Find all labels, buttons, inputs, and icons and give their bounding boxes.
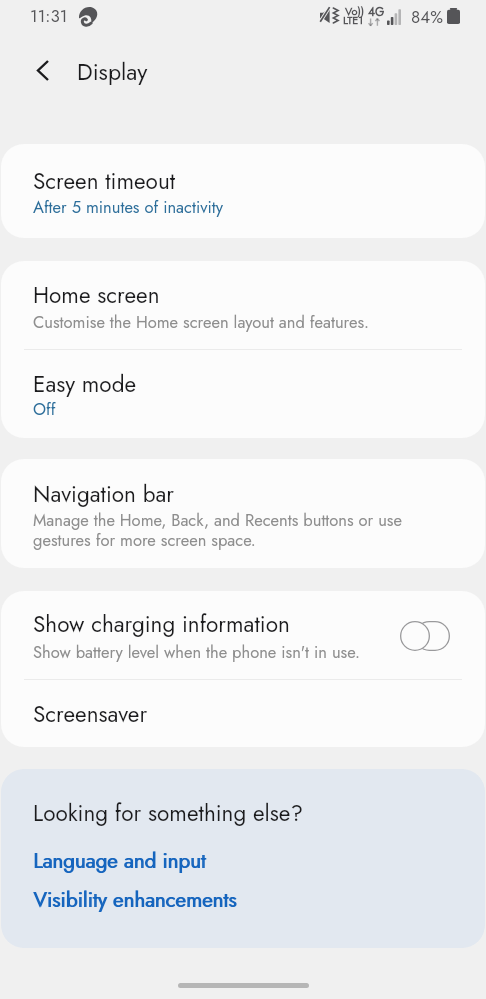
staticText: Home screen [33, 279, 160, 312]
staticText: Visibility enhancements [33, 885, 237, 915]
staticText: Navigation bar [33, 478, 175, 511]
staticText: Screensaver [33, 698, 148, 731]
staticText: 4G [368, 3, 385, 20]
staticText: LTE1 [343, 12, 364, 28]
staticText: Looking for something else? [33, 797, 303, 830]
staticText: Manage the Home, Back, and Recents butto… [33, 508, 405, 552]
staticText: Display [77, 55, 148, 88]
staticText: 11:31 [30, 4, 68, 29]
staticText: Visibility enhancements [34, 885, 238, 915]
staticText: Customise the Home screen layout and fea… [33, 310, 370, 334]
staticText: After 5 minutes of inactivity [33, 195, 223, 219]
staticText: Vo)) [345, 3, 365, 19]
button[interactable]: Home screen [1, 261, 485, 438]
button[interactable]: Language and input [33, 846, 206, 876]
staticText: Easy mode [33, 368, 137, 401]
button[interactable]: Show charging information [1, 591, 485, 747]
button[interactable]: Navigation bar [1, 459, 485, 568]
staticText: Screen timeout [33, 165, 176, 198]
staticText: Language and input [33, 846, 206, 876]
staticText: Show charging information [33, 608, 290, 641]
button[interactable]: Show charging information [400, 621, 450, 651]
staticText: 84% [411, 5, 443, 30]
staticText: Language and input [34, 846, 207, 876]
button[interactable]: Visibility enhancements [33, 885, 237, 915]
staticText: Show battery level when the phone isn't … [33, 640, 360, 664]
button[interactable]: Screen timeout [1, 144, 485, 238]
button[interactable]: Navigate up [21, 48, 65, 92]
staticText: Off [33, 397, 56, 421]
